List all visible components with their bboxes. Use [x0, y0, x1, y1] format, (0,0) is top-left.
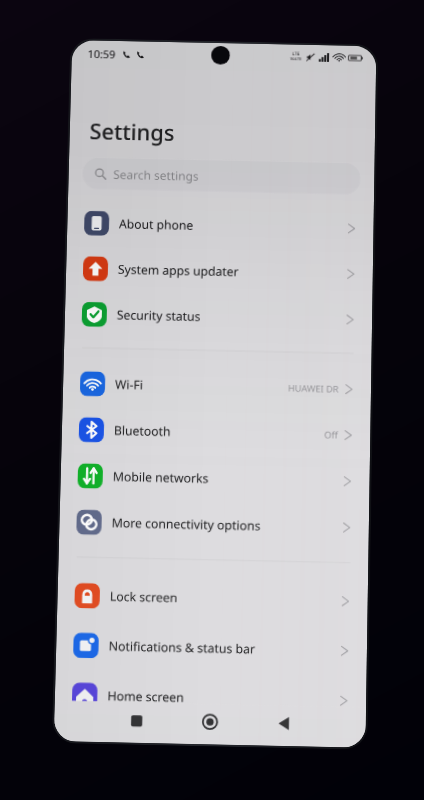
staticText: Bluetooth: [114, 422, 171, 440]
staticText: Security status: [117, 306, 201, 325]
button[interactable]: Home screen: [54, 670, 366, 725]
button[interactable]: More connectivity options: [59, 498, 369, 551]
button[interactable]: About phone: [67, 199, 374, 251]
button[interactable]: Recents: [115, 702, 157, 739]
staticText: LTE: [292, 50, 300, 56]
staticText: Home screen: [107, 687, 184, 706]
button[interactable]: Security status: [64, 290, 372, 342]
button[interactable]: Home: [189, 703, 231, 741]
button[interactable]: Bluetooth: [61, 406, 371, 458]
button[interactable]: Back: [263, 705, 304, 742]
staticText: Search settings: [113, 166, 199, 184]
button[interactable]: System apps updater: [66, 245, 373, 297]
staticText: 10:59: [87, 46, 116, 61]
button[interactable]: Search settings: [82, 158, 361, 195]
button[interactable]: Wi-Fi: [62, 360, 371, 412]
staticText: Settings: [89, 116, 175, 147]
staticText: VoLTE: [290, 56, 302, 62]
button[interactable]: Lock screen: [57, 570, 368, 626]
staticText: Wi-Fi: [115, 376, 143, 393]
staticText: System apps updater: [118, 261, 239, 280]
staticText: Lock screen: [110, 588, 179, 606]
staticText: Notifications & status bar: [108, 637, 256, 658]
staticText: More connectivity options: [111, 514, 261, 534]
staticText: HUAWEI DR: [288, 381, 339, 395]
staticText: Off: [324, 428, 338, 441]
button[interactable]: Mobile networks: [60, 452, 370, 504]
button[interactable]: Notifications & status bar: [56, 620, 367, 676]
staticText: About phone: [119, 215, 194, 234]
staticText: Mobile networks: [113, 468, 209, 487]
